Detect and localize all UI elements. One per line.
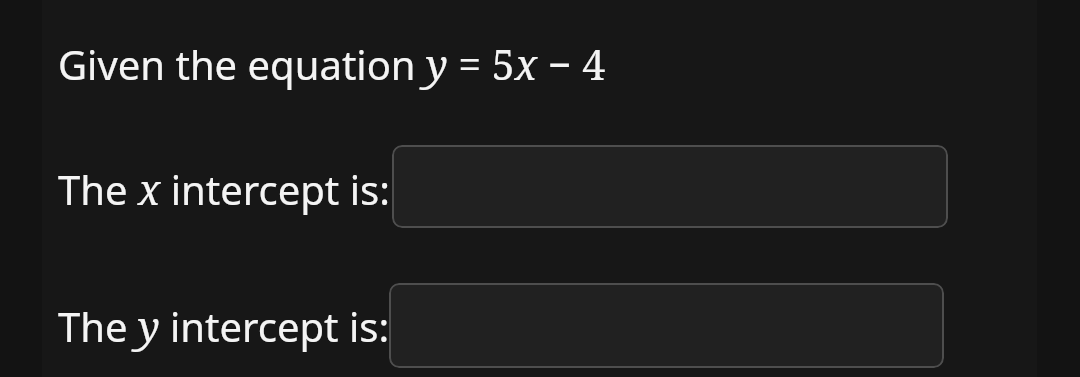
staticText: Given the equation y = 5x − 4 xyxy=(58,36,606,92)
staticText: The y intercept is: xyxy=(58,298,390,354)
staticText: The x intercept is: xyxy=(58,161,390,217)
button[interactable]: y intercept answer xyxy=(389,283,944,368)
button[interactable]: x intercept answer xyxy=(392,145,948,228)
